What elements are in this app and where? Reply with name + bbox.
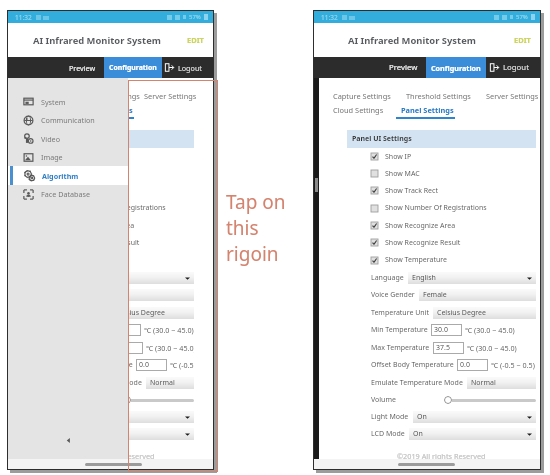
staticText: 11:32 (15, 13, 32, 22)
button[interactable]: Show IP (347, 148, 536, 165)
staticText: Temperature Unit (371, 308, 429, 318)
button[interactable]: Normal (467, 377, 536, 389)
button[interactable]: Video (8, 129, 128, 148)
button[interactable]: Show Temperature (26, 251, 194, 269)
button[interactable]: Capture Settings (12, 91, 70, 101)
button[interactable]: Logout (162, 57, 213, 78)
staticText: Tap on (226, 189, 286, 215)
button[interactable]: Show Recognize Area (347, 217, 536, 234)
button[interactable]: Show Track Rect (26, 182, 194, 199)
button[interactable]: Celsius Degree (112, 307, 194, 319)
button[interactable]: Show MAC (26, 165, 194, 182)
button[interactable]: EDIT (178, 29, 213, 51)
button[interactable]: Face Database (8, 185, 128, 203)
button[interactable]: Threshold Settings (75, 91, 140, 101)
staticText: Show Temperature (385, 255, 447, 265)
button[interactable]: On (409, 428, 536, 440)
button[interactable]: Normal (146, 377, 194, 389)
button[interactable]: Show IP (26, 148, 194, 165)
button[interactable]: EDIT (505, 29, 540, 51)
staticText: Show Recognize Area (385, 221, 456, 231)
staticText: Emulate Temperature Mode (50, 378, 142, 388)
button[interactable]: Show Number Of Registrations (347, 199, 536, 217)
staticText: Configuration (431, 63, 481, 73)
staticText: Preview (389, 62, 418, 73)
staticText: ℃ (-0.5 ~ 0.5) (170, 360, 194, 370)
staticText: 37.5 (436, 343, 450, 353)
button[interactable]: On (413, 411, 536, 423)
staticText: Normal (150, 378, 175, 388)
staticText: English (412, 273, 436, 283)
staticText: Configuration (109, 63, 157, 72)
button[interactable]: Preview (61, 57, 104, 78)
button[interactable]: Show Recognize Result (347, 234, 536, 251)
button[interactable]: 0.0 (457, 359, 488, 371)
button[interactable]: Female (419, 289, 536, 301)
staticText: Face Database (41, 189, 90, 199)
button[interactable]: 37.5 (433, 342, 464, 354)
button[interactable]: Configuration (104, 57, 162, 78)
button[interactable]: Cloud Settings (333, 105, 384, 115)
button[interactable]: Celsius Degree (433, 307, 536, 319)
button[interactable]: Show Number Of Registrations (26, 199, 194, 217)
button[interactable]: Logout (486, 57, 540, 78)
button[interactable]: Show Temperature (347, 251, 536, 269)
staticText: Volume (371, 395, 396, 405)
button[interactable]: 30.0 (110, 324, 141, 336)
button[interactable]: Show Recognize Area (26, 217, 194, 234)
button[interactable]: Server Settings (144, 91, 197, 101)
button[interactable]: On (88, 428, 194, 440)
button[interactable]: Threshold Settings (406, 91, 471, 101)
staticText: 0.0 (460, 360, 470, 370)
staticText: ℃ (30.0 ~ 45.0) (465, 325, 515, 335)
staticText: Image (41, 152, 63, 162)
button[interactable]: Show MAC (347, 165, 536, 182)
button[interactable]: Female (98, 289, 194, 301)
button[interactable]: 37.5 (112, 342, 143, 354)
staticText: LCD Mode (371, 429, 405, 439)
staticText: Server Settings (144, 91, 197, 101)
button[interactable]: Server Settings (486, 91, 539, 101)
button[interactable]: Show Track Rect (347, 182, 536, 199)
button[interactable]: Communication (8, 111, 128, 129)
button[interactable]: 30.0 (431, 324, 462, 336)
staticText: Max Temperature (371, 343, 430, 353)
button[interactable]: Panel Settings (80, 105, 133, 115)
staticText: Show Recognize Area (64, 221, 135, 231)
button[interactable]: Image (8, 148, 128, 166)
button[interactable]: Volume slider (123, 396, 131, 404)
staticText: Algorithm (42, 171, 79, 181)
staticText: Logout (178, 63, 202, 73)
button[interactable]: Panel Settings (401, 105, 454, 115)
staticText: Server Settings (486, 91, 539, 101)
button[interactable]: Algorithm (8, 166, 128, 185)
button[interactable]: Show Recognize Result (26, 234, 194, 251)
button[interactable]: Cloud Settings (12, 105, 63, 115)
staticText: Panel UI Settings (31, 134, 91, 144)
button[interactable]: System (8, 92, 128, 111)
button[interactable]: Capture Settings (333, 91, 391, 101)
button[interactable]: 0.0 (136, 359, 167, 371)
staticText: EDIT (187, 35, 204, 45)
button[interactable]: English (87, 272, 194, 284)
staticText: Normal (471, 378, 496, 388)
button[interactable]: English (408, 272, 536, 284)
button[interactable]: Configuration (426, 57, 486, 78)
button[interactable]: On (92, 411, 194, 423)
staticText: Cloud Settings (333, 105, 384, 115)
staticText: Show Number Of Registrations (64, 203, 166, 213)
staticText: Show IP (385, 152, 412, 162)
staticText: Language (371, 273, 404, 283)
staticText: AI Infrared Monitor System (33, 34, 161, 47)
staticText: On (417, 412, 427, 422)
staticText: Offset Body Temperature (50, 360, 133, 370)
button[interactable]: Preview (381, 57, 426, 78)
button[interactable]: Volume slider (444, 396, 452, 404)
staticText: Emulate Temperature Mode (371, 378, 463, 388)
